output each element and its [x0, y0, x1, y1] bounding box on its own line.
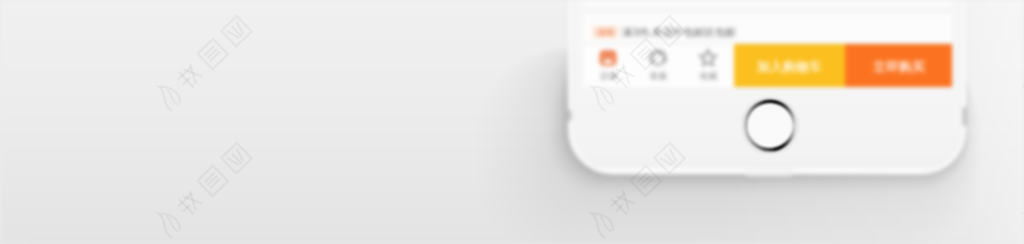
staticText: 立即购买	[873, 58, 925, 74]
button[interactable]: 立即购买	[845, 44, 952, 87]
staticText: 满3件,本店中包邮区包邮	[622, 25, 736, 39]
staticText: 加入购物车	[757, 58, 822, 74]
staticText: 促销	[598, 27, 614, 37]
button[interactable]: 店铺	[583, 44, 633, 87]
button[interactable]: 客服	[633, 44, 683, 87]
staticText: 收藏	[700, 71, 717, 82]
button[interactable]: 促销	[593, 21, 952, 43]
button[interactable]: 收藏	[683, 44, 733, 87]
button[interactable]: Home	[744, 99, 796, 151]
staticText: 客服	[650, 71, 667, 82]
staticText: 店铺	[600, 71, 617, 82]
button[interactable]: 加入购物车	[734, 44, 845, 87]
